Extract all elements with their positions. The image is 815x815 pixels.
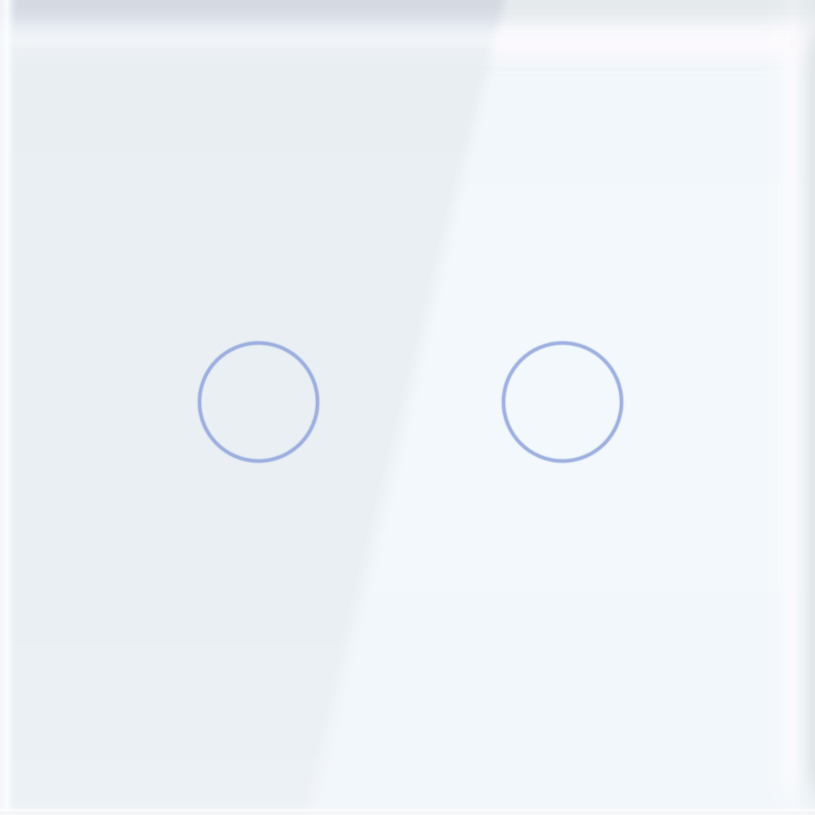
button[interactable]: Left switch: [194, 338, 322, 466]
button[interactable]: Right switch: [498, 338, 626, 466]
